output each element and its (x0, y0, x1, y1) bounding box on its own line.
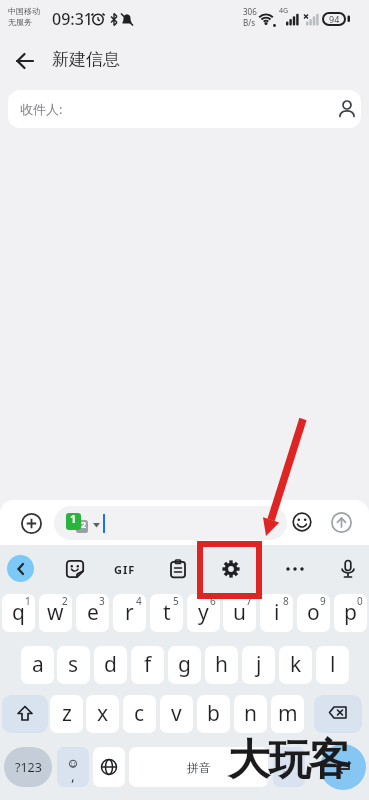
button[interactable]: GIF (108, 555, 142, 583)
button[interactable]: e (76, 594, 109, 632)
button[interactable] (164, 555, 192, 583)
staticText: GIF (114, 562, 136, 577)
staticText: h (215, 650, 228, 679)
button[interactable] (2, 695, 48, 733)
staticText: 09:31 (52, 8, 93, 30)
staticText: n (244, 699, 257, 728)
staticText: z (62, 699, 72, 728)
staticText: c (134, 699, 145, 728)
button[interactable]: b (197, 695, 230, 733)
staticText: 2 (81, 518, 87, 530)
button[interactable]: d (94, 646, 127, 684)
staticText: t (163, 598, 171, 627)
staticText: 8 (283, 594, 289, 608)
button[interactable] (314, 695, 362, 733)
staticText: f (144, 650, 152, 679)
staticText: 1 (25, 594, 31, 608)
staticText: i (274, 598, 280, 627)
button[interactable]: 拼音 (129, 747, 268, 787)
button[interactable] (217, 555, 245, 583)
staticText: 收件人: (20, 100, 63, 118)
button[interactable]: z (50, 695, 83, 733)
staticText: 6 (210, 594, 216, 608)
staticText: 0 (357, 594, 363, 608)
button[interactable] (281, 555, 309, 583)
staticText: s (68, 650, 79, 679)
button[interactable]: o (297, 594, 330, 632)
staticText: e (87, 598, 99, 627)
staticText: 新建信息 (52, 49, 120, 70)
staticText: d (104, 650, 117, 679)
staticText: 1 (70, 511, 77, 526)
button[interactable]: g (168, 646, 201, 684)
staticText: 拼音 (187, 760, 211, 775)
button[interactable]: k (279, 646, 312, 684)
button[interactable]: f (131, 646, 164, 684)
staticText: 2 (62, 594, 68, 608)
button[interactable] (320, 744, 366, 790)
staticText: y (198, 598, 209, 627)
staticText: x (97, 699, 109, 728)
button[interactable]: v (160, 695, 193, 733)
button[interactable]: i (260, 594, 293, 632)
staticText: ?123 (15, 759, 42, 776)
staticText: g (178, 650, 191, 679)
button[interactable]: , (57, 747, 89, 787)
staticText: 大玩客 (228, 734, 350, 787)
button[interactable]: 收件人: (8, 90, 361, 128)
button[interactable] (288, 508, 316, 536)
button[interactable]: w (39, 594, 72, 632)
button[interactable]: t (150, 594, 183, 632)
staticText: a (32, 650, 44, 679)
button[interactable]: a (21, 646, 54, 684)
button[interactable]: p (334, 594, 367, 632)
button[interactable]: q (2, 594, 35, 632)
button[interactable]: y (187, 594, 220, 632)
staticText: w (47, 598, 64, 627)
staticText: 。 (282, 760, 296, 778)
staticText: m (278, 699, 298, 728)
button[interactable] (17, 509, 45, 537)
button[interactable] (334, 555, 362, 583)
button[interactable] (61, 555, 89, 583)
staticText: 9 (320, 594, 326, 608)
button[interactable]: l (316, 646, 349, 684)
staticText: j (256, 650, 262, 679)
staticText: b (207, 699, 220, 728)
staticText: , (71, 766, 75, 785)
button[interactable]: u (223, 594, 256, 632)
staticText: 3 (99, 594, 105, 608)
button[interactable] (93, 747, 125, 787)
button[interactable]: m (271, 695, 304, 733)
button[interactable]: n (234, 695, 267, 733)
staticText: o (307, 598, 320, 627)
button[interactable] (327, 508, 355, 536)
button[interactable]: s (57, 646, 90, 684)
staticText: 94 (329, 13, 340, 25)
button[interactable]: x (86, 695, 119, 733)
staticText: 7 (246, 594, 252, 608)
staticText: 中国移动 (8, 6, 40, 16)
button[interactable]: j (242, 646, 275, 684)
staticText: 306 (243, 6, 257, 17)
button[interactable]: ?123 (4, 747, 52, 787)
button[interactable] (7, 555, 34, 582)
button[interactable]: h (205, 646, 238, 684)
staticText: 5 (173, 594, 179, 608)
staticText: 4G (279, 6, 289, 16)
button[interactable]: 。 (273, 747, 305, 787)
staticText: B/s (243, 17, 256, 28)
staticText: l (330, 650, 336, 679)
button[interactable]: r (113, 594, 146, 632)
staticText: k (290, 650, 302, 679)
staticText: 4 (136, 594, 142, 608)
button[interactable]: 1 (54, 506, 287, 540)
button[interactable] (6, 42, 44, 80)
staticText: u (233, 598, 246, 627)
staticText: p (344, 598, 357, 627)
staticText: 无服务 (8, 17, 32, 27)
staticText: q (12, 598, 25, 627)
staticText: r (125, 598, 134, 627)
staticText: v (171, 699, 182, 728)
button[interactable]: c (123, 695, 156, 733)
